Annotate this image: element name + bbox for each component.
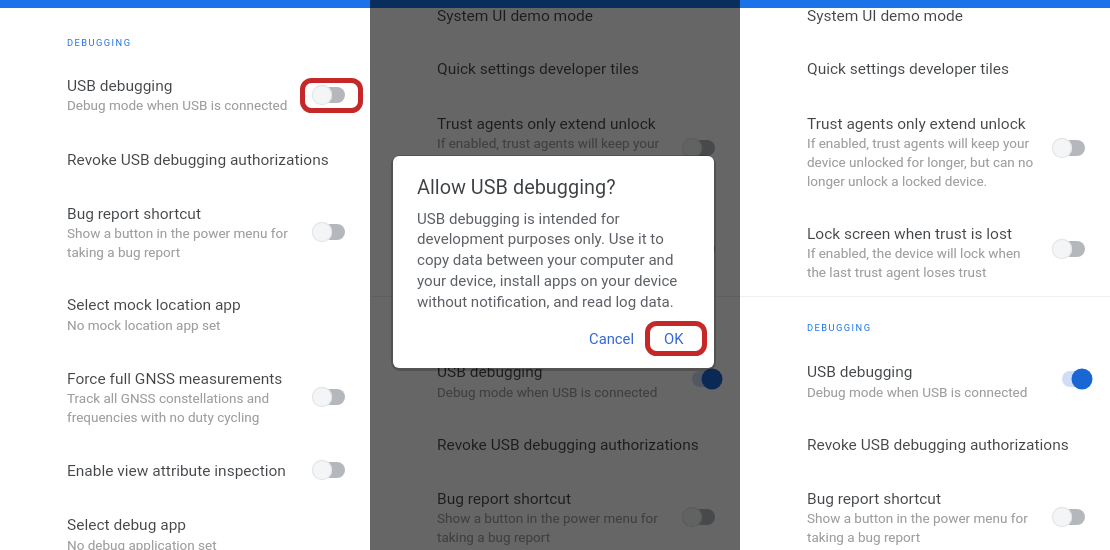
button[interactable] (780, 220, 1090, 286)
staticText: System UI demo mode (807, 7, 964, 25)
staticText: Show a button in the power menu for (437, 510, 658, 526)
button[interactable]: Toggle setting (310, 384, 355, 410)
staticText: Enable view attribute inspection (67, 462, 286, 480)
button[interactable] (780, 110, 1090, 196)
button[interactable]: Toggle setting (680, 366, 725, 392)
staticText: Revoke USB debugging authorizations (67, 151, 329, 169)
staticText: Cancel (589, 330, 635, 347)
button[interactable] (410, 431, 720, 465)
button[interactable]: Toggle setting (310, 219, 355, 245)
staticText: Show a button in the power menu for (67, 225, 288, 241)
staticText: DEBUGGING (67, 37, 132, 48)
button[interactable]: Toggle setting (1050, 504, 1095, 530)
staticText: If enabled, the device will lock when (437, 245, 651, 261)
button[interactable] (370, 0, 740, 550)
staticText: Force full GNSS measurements (67, 370, 283, 388)
staticText: Track all GNSS constellations and (67, 390, 270, 406)
staticText: Allow USB debugging? (417, 176, 616, 199)
button[interactable] (410, 110, 720, 196)
button[interactable] (40, 70, 350, 120)
staticText: If enabled, trust agents will keep your (437, 135, 660, 151)
button[interactable] (780, 55, 1090, 89)
staticText: Bug report shortcut (437, 490, 571, 508)
button[interactable]: Toggle setting (680, 236, 725, 262)
button[interactable] (40, 290, 350, 340)
staticText: Debug mode when USB is connected (437, 384, 658, 400)
staticText: Trust agents only extend unlock (807, 115, 1026, 133)
staticText: Debug mode when USB is connected (67, 97, 288, 113)
staticText: Revoke USB debugging authorizations (807, 436, 1069, 454)
staticText: USB debugging is intended for developmen… (417, 210, 678, 311)
staticText: device unlocked for longer, but can no (437, 154, 664, 170)
button[interactable] (780, 2, 1090, 36)
staticText: Trust agents only extend unlock (437, 115, 656, 133)
button[interactable] (410, 358, 720, 408)
button[interactable]: OK (643, 321, 705, 356)
button[interactable]: Toggle setting (1050, 135, 1095, 161)
button[interactable]: Cancel (579, 322, 645, 354)
staticText: Bug report shortcut (67, 205, 201, 223)
button[interactable]: Toggle setting (310, 82, 355, 108)
button[interactable] (780, 431, 1090, 465)
staticText: device unlocked for longer, but can no (807, 154, 1034, 170)
staticText: Lock screen when trust is lost (437, 225, 642, 243)
staticText: Quick settings developer tiles (437, 60, 639, 78)
button[interactable] (40, 364, 350, 432)
staticText: If enabled, trust agents will keep your (807, 135, 1030, 151)
button[interactable]: Toggle setting (310, 457, 355, 483)
button[interactable] (40, 144, 350, 178)
staticText: USB debugging (807, 363, 913, 381)
staticText: taking a bug report (437, 529, 551, 545)
staticText: longer unlock a locked device. (807, 173, 988, 189)
staticText: the last trust agent loses trust (807, 264, 987, 280)
staticText: No debug application set (67, 537, 217, 550)
button[interactable] (40, 510, 350, 550)
button[interactable] (410, 2, 720, 36)
button[interactable] (40, 198, 350, 266)
button[interactable] (410, 485, 720, 550)
button[interactable] (780, 358, 1090, 408)
button[interactable] (40, 456, 350, 490)
staticText: Select debug app (67, 516, 187, 534)
button[interactable]: Toggle setting (1050, 366, 1095, 392)
staticText: Debug mode when USB is connected (807, 384, 1028, 400)
button[interactable]: Toggle setting (680, 135, 725, 161)
button[interactable] (410, 220, 720, 286)
staticText: DEBUGGING (807, 322, 872, 333)
staticText: If enabled, the device will lock when (807, 245, 1021, 261)
staticText: taking a bug report (67, 244, 181, 260)
button[interactable] (410, 55, 720, 89)
staticText: Quick settings developer tiles (807, 60, 1009, 78)
staticText: Lock screen when trust is lost (807, 225, 1012, 243)
staticText: frequencies with no duty cycling (67, 409, 260, 425)
staticText: Select mock location app (67, 296, 241, 314)
button[interactable]: Toggle setting (1050, 236, 1095, 262)
staticText: Bug report shortcut (807, 490, 941, 508)
staticText: OK (664, 330, 684, 347)
staticText: the last trust agent loses trust (437, 264, 617, 280)
button[interactable]: Toggle setting (680, 504, 725, 530)
staticText: USB debugging (67, 77, 173, 95)
staticText: taking a bug report (807, 529, 921, 545)
staticText: No mock location app set (67, 317, 221, 333)
staticText: longer unlock a locked device. (437, 173, 618, 189)
staticText: System UI demo mode (437, 7, 594, 25)
staticText: USB debugging (437, 363, 543, 381)
button[interactable] (780, 485, 1090, 550)
staticText: Revoke USB debugging authorizations (437, 436, 699, 454)
staticText: Show a button in the power menu for (807, 510, 1028, 526)
